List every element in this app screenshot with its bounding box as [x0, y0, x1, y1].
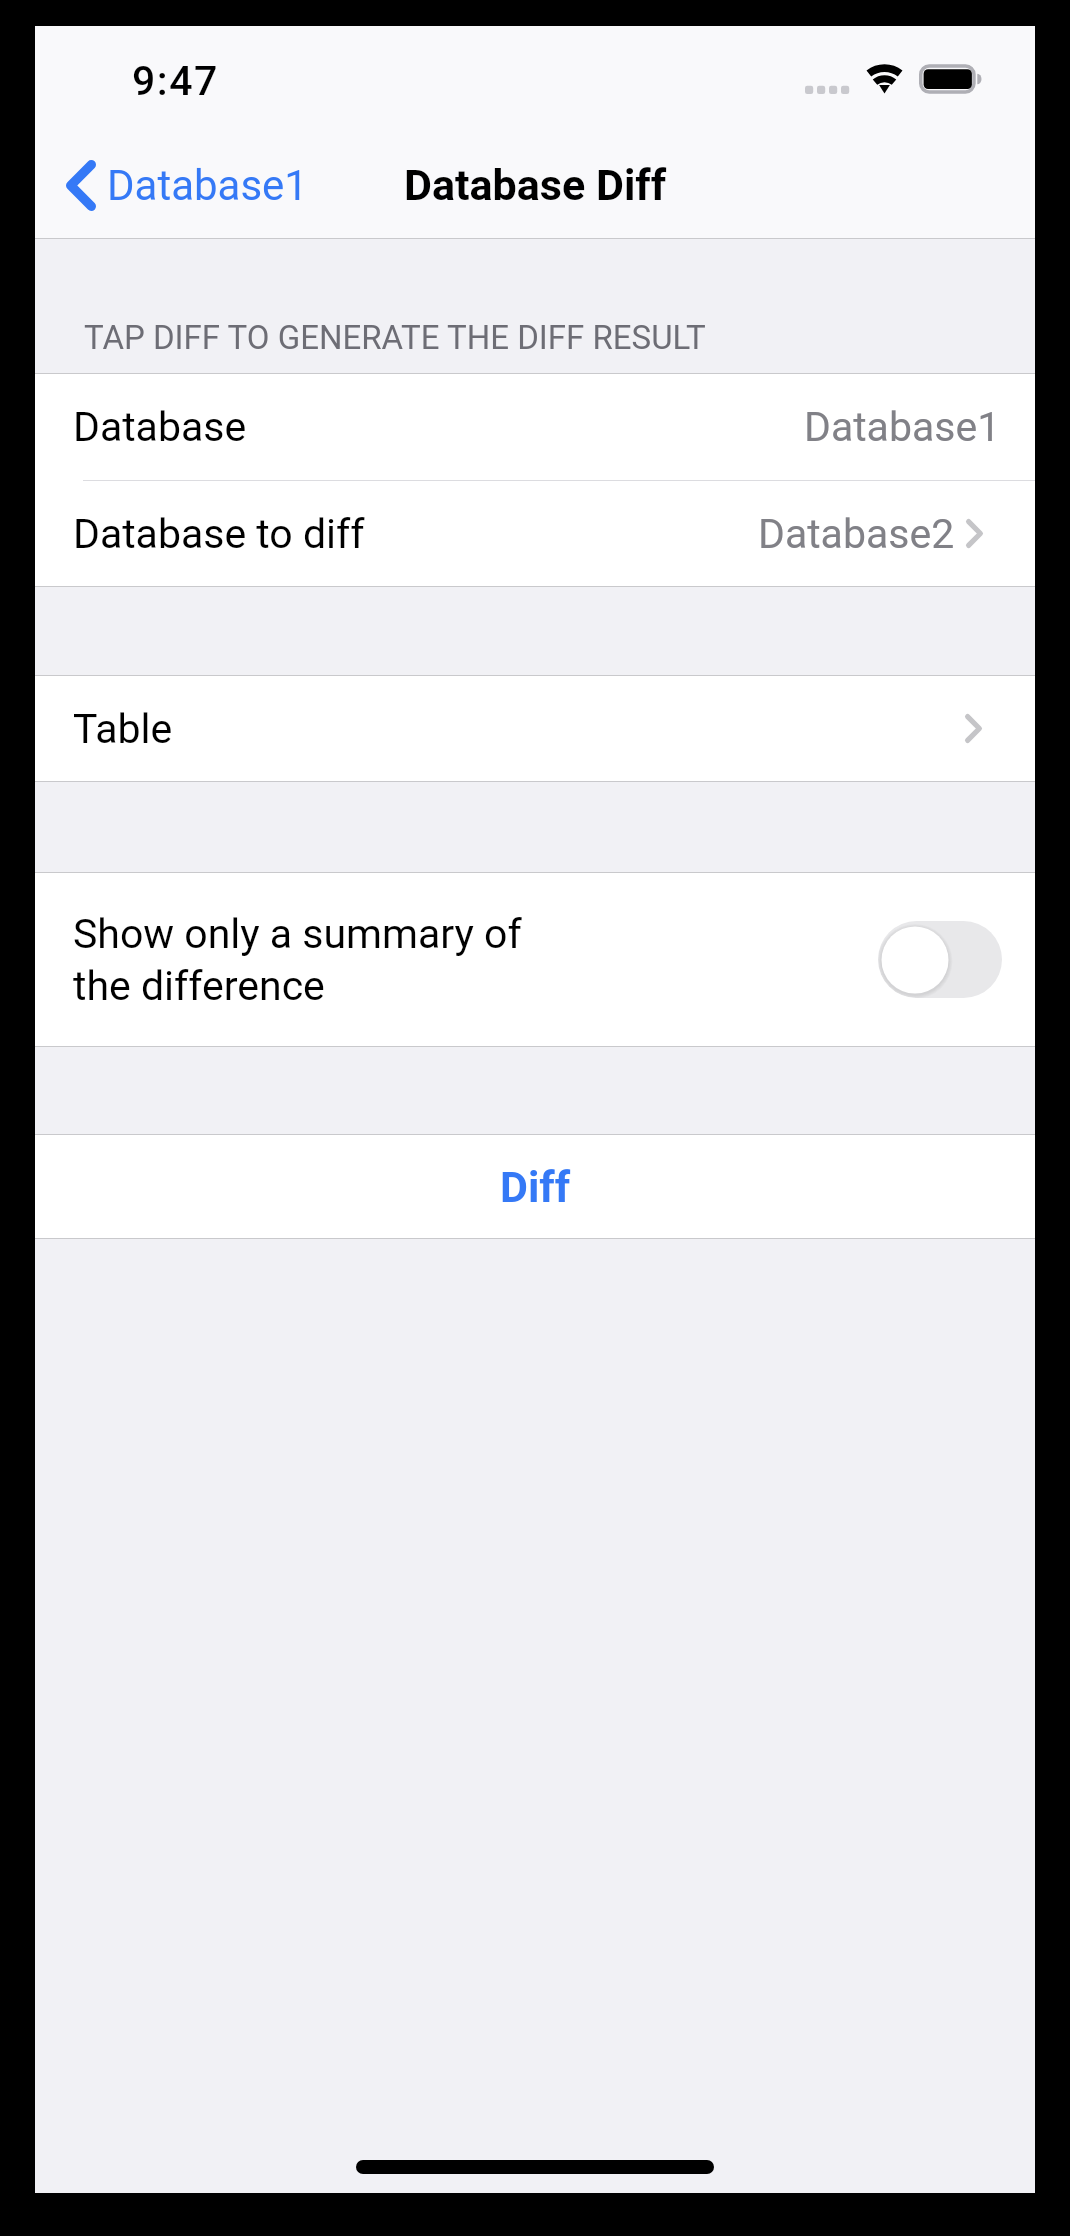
staticText: 9:47	[132, 57, 219, 105]
button[interactable]: Database	[35, 374, 1035, 480]
staticText: Show only a summary of the difference	[73, 910, 522, 1010]
staticText: Table	[73, 705, 173, 753]
staticText: Database1	[107, 161, 308, 210]
staticText: Database2	[758, 510, 955, 558]
button[interactable]: Show only a summary of the difference	[35, 873, 1035, 1046]
button[interactable]: Table	[35, 676, 1035, 781]
button[interactable]: Database to diff	[35, 481, 1035, 586]
staticText: Database1	[804, 403, 1001, 451]
staticText: Database to diff	[73, 510, 365, 558]
staticText: Diff	[500, 1162, 571, 1212]
staticText: Database Diff	[404, 160, 667, 210]
button[interactable]: Database1	[35, 148, 320, 223]
button[interactable]: Diff	[35, 1135, 1035, 1238]
staticText: Database	[73, 403, 247, 451]
staticText: TAP DIFF TO GENERATE THE DIFF RESULT	[84, 318, 706, 357]
button[interactable]: Show only a summary of the difference	[878, 921, 1002, 998]
